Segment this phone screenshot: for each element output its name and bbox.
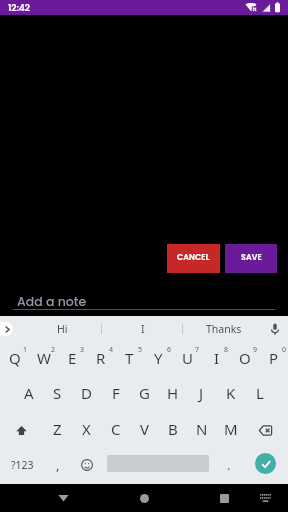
- staticText: 4: [109, 345, 114, 355]
- button[interactable]: More suggestions: [0, 322, 13, 336]
- staticText: Hi: [57, 322, 68, 336]
- staticText: S: [53, 383, 62, 403]
- button[interactable]: I: [202, 341, 231, 375]
- staticText: K: [226, 383, 236, 403]
- staticText: 1: [23, 345, 28, 355]
- button[interactable]: W: [29, 341, 58, 375]
- staticText: 9: [253, 345, 258, 355]
- button[interactable]: O: [230, 341, 259, 375]
- button[interactable]: D: [72, 376, 101, 410]
- staticText: W: [37, 348, 51, 368]
- button[interactable]: Hi: [24, 316, 100, 342]
- button[interactable]: Y: [144, 341, 173, 375]
- staticText: ,: [56, 456, 60, 474]
- staticText: O: [239, 348, 251, 368]
- button[interactable]: S: [43, 376, 72, 410]
- button[interactable]: A: [14, 376, 43, 410]
- button[interactable]: P: [259, 341, 288, 375]
- staticText: B: [168, 419, 178, 439]
- button[interactable]: Back: [49, 484, 77, 512]
- button[interactable]: K: [216, 376, 245, 410]
- staticText: ?123: [11, 458, 34, 472]
- button[interactable]: Voice input: [262, 316, 288, 342]
- button[interactable]: G: [130, 376, 159, 410]
- button[interactable]: CANCEL: [167, 244, 220, 273]
- button[interactable]: F: [101, 376, 130, 410]
- staticText: C: [111, 419, 121, 439]
- button[interactable]: V: [130, 412, 159, 446]
- button[interactable]: I: [105, 316, 181, 342]
- staticText: 12:42: [8, 2, 30, 15]
- button[interactable]: B: [158, 412, 187, 446]
- staticText: J: [199, 383, 204, 403]
- staticText: F: [112, 383, 120, 403]
- button[interactable]: T: [115, 341, 144, 375]
- staticText: H: [167, 383, 179, 403]
- button[interactable]: J: [187, 376, 216, 410]
- staticText: Thanks: [206, 322, 242, 336]
- button[interactable]: H: [158, 376, 187, 410]
- button[interactable]: Q: [0, 341, 29, 375]
- button[interactable]: Shift: [7, 413, 36, 447]
- staticText: X: [82, 419, 91, 439]
- button[interactable]: E: [58, 341, 87, 375]
- staticText: N: [196, 419, 208, 439]
- staticText: E: [68, 348, 77, 368]
- staticText: .: [227, 456, 231, 474]
- button[interactable]: R: [86, 341, 115, 375]
- button[interactable]: Add a note: [0, 288, 288, 316]
- staticText: L: [256, 383, 264, 403]
- staticText: 7: [195, 345, 200, 355]
- button[interactable]: Emoji: [73, 448, 101, 482]
- button[interactable]: M: [216, 412, 245, 446]
- staticText: Z: [53, 419, 62, 439]
- staticText: 3: [80, 345, 85, 355]
- staticText: 5: [138, 345, 143, 355]
- staticText: M: [224, 419, 238, 439]
- staticText: T: [125, 348, 134, 368]
- button[interactable]: ,: [44, 448, 72, 482]
- button[interactable]: U: [173, 341, 202, 375]
- button[interactable]: C: [101, 412, 130, 446]
- staticText: G: [139, 383, 150, 403]
- staticText: I: [214, 348, 220, 368]
- button[interactable]: Thanks: [186, 316, 262, 342]
- staticText: 6: [167, 345, 172, 355]
- staticText: CANCEL: [177, 252, 210, 263]
- staticText: 8: [224, 345, 229, 355]
- staticText: A: [24, 383, 34, 403]
- button[interactable]: Recents: [210, 484, 238, 512]
- button[interactable]: L: [245, 376, 274, 410]
- staticText: I: [141, 322, 145, 336]
- button[interactable]: SAVE: [225, 244, 277, 273]
- staticText: R: [96, 348, 106, 368]
- staticText: D: [81, 383, 92, 403]
- staticText: V: [140, 419, 150, 439]
- staticText: U: [182, 348, 193, 368]
- staticText: 0: [282, 345, 287, 355]
- button[interactable]: .: [216, 448, 242, 482]
- button[interactable]: Home: [130, 484, 158, 512]
- staticText: Y: [154, 348, 163, 368]
- button[interactable]: Backspace: [251, 413, 280, 447]
- button[interactable]: Z: [43, 412, 72, 446]
- staticText: Add a note: [17, 293, 87, 310]
- staticText: Q: [9, 348, 21, 368]
- button[interactable]: Hide keyboard: [251, 484, 279, 512]
- staticText: SAVE: [241, 252, 262, 263]
- staticText: P: [269, 348, 279, 368]
- button[interactable]: Enter: [255, 453, 276, 474]
- button[interactable]: N: [187, 412, 216, 446]
- staticText: 2: [51, 345, 56, 355]
- button[interactable]: ?123: [0, 448, 44, 482]
- button[interactable]: X: [72, 412, 101, 446]
